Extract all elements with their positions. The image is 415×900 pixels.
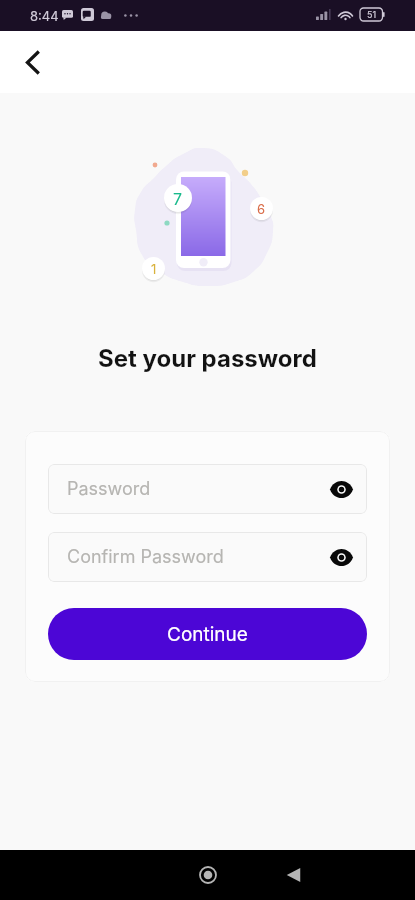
button[interactable]: Home xyxy=(186,853,230,897)
staticText: 51 xyxy=(367,9,377,20)
button[interactable]: Continue xyxy=(48,608,367,660)
staticText: 6 xyxy=(257,201,266,217)
button[interactable]: Back xyxy=(271,853,315,897)
button[interactable]: Show password xyxy=(327,475,355,503)
staticText: Continue xyxy=(167,623,248,646)
staticText: Password xyxy=(67,478,151,500)
staticText: 7 xyxy=(173,189,183,208)
button[interactable]: Password xyxy=(48,464,367,514)
staticText: Set your password xyxy=(98,344,317,373)
button[interactable]: Back xyxy=(8,38,56,86)
staticText: Confirm Password xyxy=(67,546,224,568)
staticText: 8:44 xyxy=(30,8,59,24)
button[interactable]: Confirm Password xyxy=(48,532,367,582)
staticText: 1 xyxy=(151,261,157,277)
button[interactable]: Show password xyxy=(327,543,355,571)
